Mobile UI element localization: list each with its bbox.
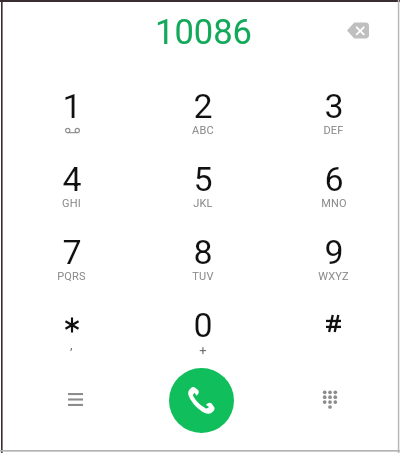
staticText: GHI <box>62 197 81 210</box>
button[interactable]: 9 <box>268 232 399 305</box>
staticText: 1 <box>62 86 82 126</box>
staticText: DEF <box>323 124 344 137</box>
button[interactable]: 1 <box>6 86 137 159</box>
staticText: 8 <box>193 232 213 272</box>
staticText: , <box>70 337 73 352</box>
staticText: MNO <box>321 197 347 210</box>
staticText: 6 <box>324 159 344 199</box>
button[interactable]: 3 <box>268 86 399 159</box>
button[interactable] <box>268 305 399 378</box>
staticText: 5 <box>193 159 213 199</box>
staticText: PQRS <box>57 270 86 283</box>
button[interactable]: 2 <box>137 86 268 159</box>
staticText: 9 <box>324 232 344 272</box>
staticText: JKL <box>193 197 213 210</box>
staticText: + <box>199 343 207 358</box>
button[interactable]: Call <box>169 368 234 433</box>
button[interactable]: 7 <box>6 232 137 305</box>
button[interactable]: 4 <box>6 159 137 232</box>
staticText: 0 <box>193 305 213 345</box>
button[interactable]: 8 <box>137 232 268 305</box>
button[interactable]: 0 <box>137 305 268 378</box>
staticText: 7 <box>62 232 82 272</box>
button[interactable]: 5 <box>137 159 268 232</box>
staticText: 3 <box>324 86 344 126</box>
button[interactable]: , <box>6 305 137 378</box>
button[interactable]: Backspace <box>338 10 378 50</box>
staticText: 2 <box>193 86 213 126</box>
button[interactable]: 6 <box>268 159 399 232</box>
staticText: TUV <box>192 270 214 283</box>
staticText: 4 <box>62 159 82 199</box>
staticText: 10086 <box>155 12 252 52</box>
button[interactable]: Call log <box>0 345 134 453</box>
staticText: ABC <box>192 124 214 137</box>
button[interactable]: Dialpad <box>267 345 400 453</box>
staticText: WXYZ <box>318 270 349 283</box>
